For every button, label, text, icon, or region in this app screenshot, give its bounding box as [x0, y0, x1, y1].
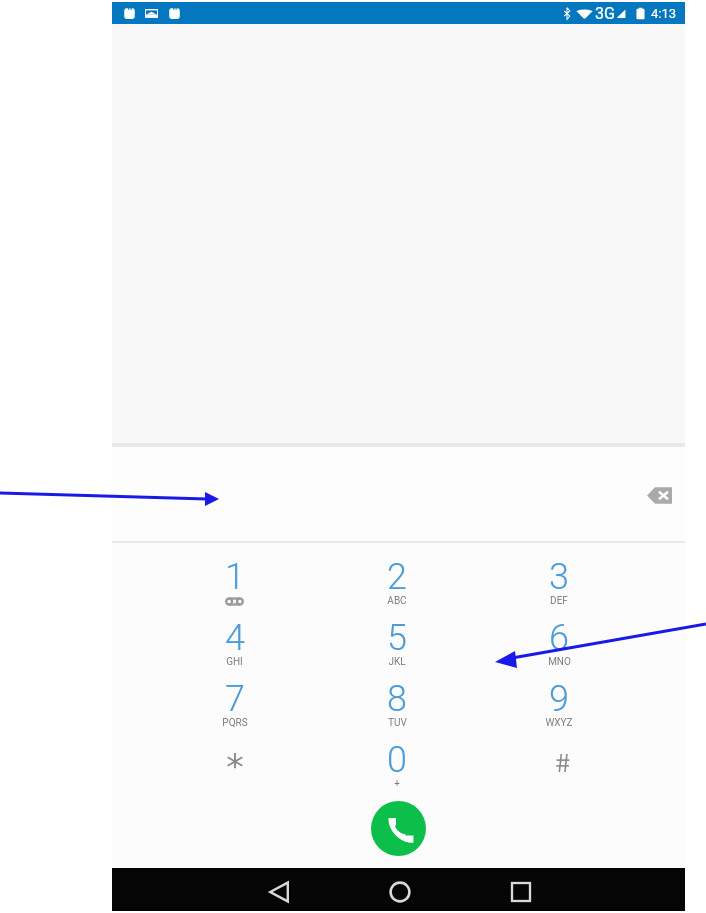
button[interactable]: Call — [371, 801, 426, 856]
button[interactable]: Home — [376, 870, 424, 913]
button[interactable]: 5 — [316, 617, 478, 678]
button[interactable]: 8 — [316, 678, 478, 739]
button[interactable]: Backspace — [637, 473, 681, 517]
staticText: 3 — [549, 556, 569, 598]
staticText: JKL — [388, 656, 406, 668]
staticText: 5 — [387, 617, 407, 659]
button[interactable]: 6 — [478, 617, 640, 678]
button[interactable]: 1 — [153, 556, 316, 617]
button[interactable] — [153, 739, 316, 800]
button[interactable]: 4 — [153, 617, 316, 678]
staticText: + — [394, 778, 400, 790]
button[interactable]: 0 — [316, 739, 478, 800]
staticText: ABC — [387, 595, 407, 607]
staticText: WXYZ — [545, 717, 573, 729]
staticText: DEF — [550, 595, 568, 607]
staticText: 7 — [225, 678, 245, 720]
staticText: 6 — [549, 617, 569, 659]
staticText: TUV — [388, 717, 407, 729]
staticText: GHI — [226, 656, 243, 668]
button[interactable]: Recents — [497, 870, 545, 913]
button[interactable]: Back — [255, 870, 303, 913]
staticText: 3G — [595, 4, 615, 23]
staticText: 8 — [387, 678, 407, 720]
staticText: 4:13 — [651, 6, 677, 21]
staticText: PQRS — [222, 717, 248, 729]
button[interactable]: 2 — [316, 556, 478, 617]
staticText: 1 — [225, 556, 245, 598]
button[interactable] — [478, 739, 640, 800]
staticText: MNO — [548, 656, 571, 668]
staticText: 4 — [225, 617, 245, 659]
button[interactable]: 9 — [478, 678, 640, 739]
staticText: 9 — [549, 678, 569, 720]
button[interactable]: 7 — [153, 678, 316, 739]
staticText: 0 — [387, 739, 407, 781]
button[interactable]: 3 — [478, 556, 640, 617]
staticText: 2 — [387, 556, 407, 598]
